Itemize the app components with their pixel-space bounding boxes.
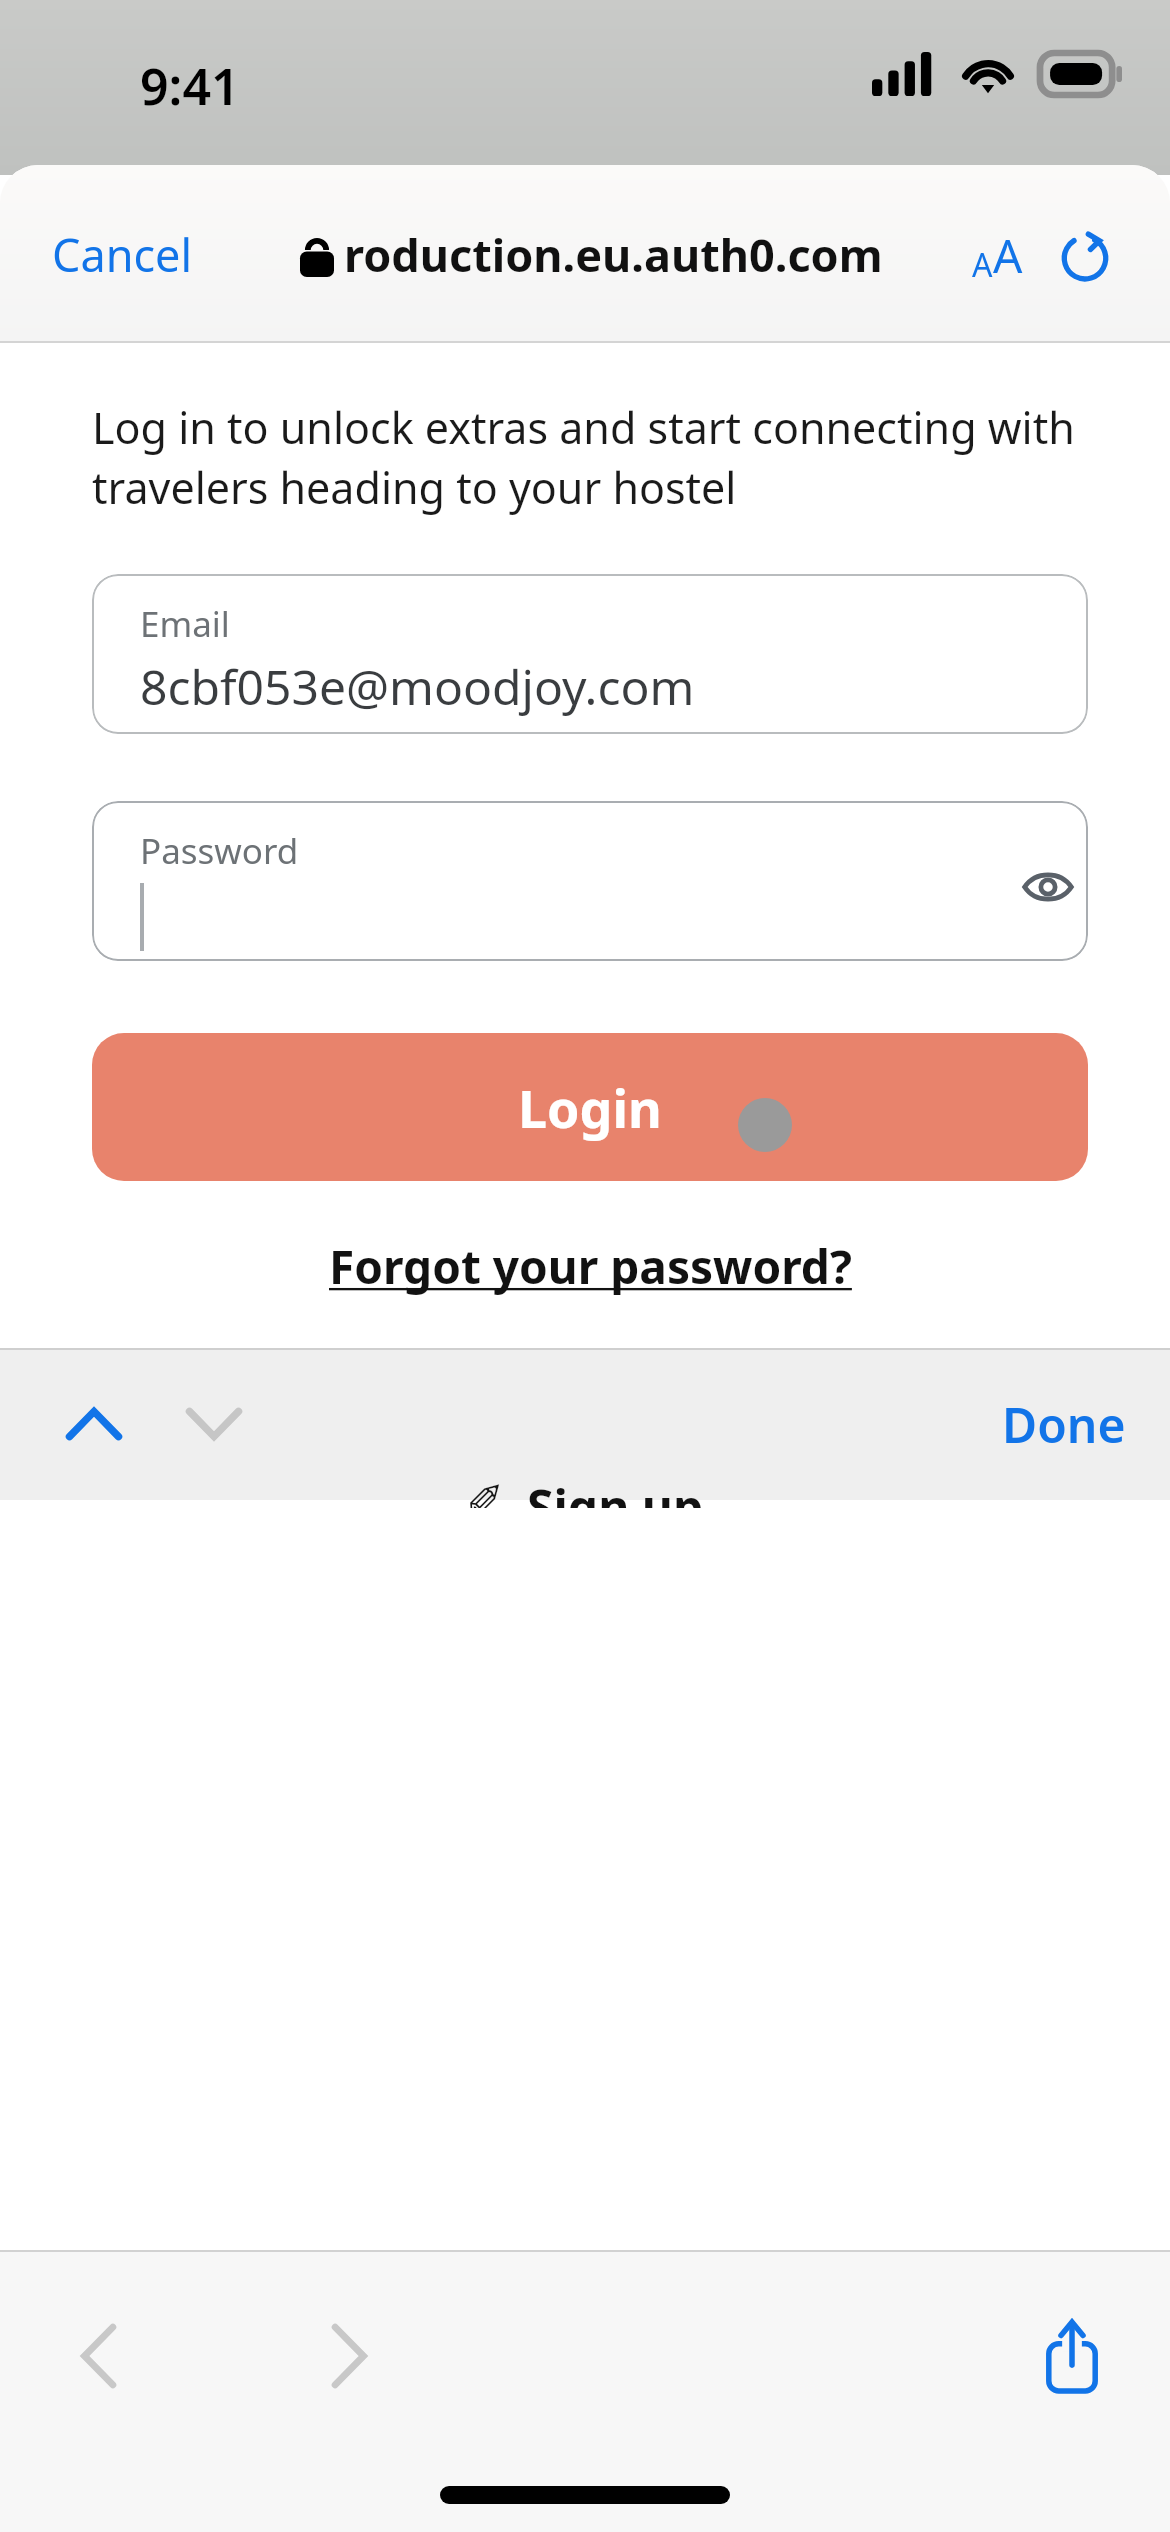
- staticText: Forgot your password?: [329, 1235, 852, 1298]
- staticText: Sign up: [527, 1474, 704, 1508]
- button[interactable]: Forward: [292, 2298, 408, 2414]
- staticText: A: [993, 224, 1023, 287]
- button[interactable]: Cancel: [48, 216, 197, 293]
- button[interactable]: Forgot your password?: [321, 1231, 860, 1302]
- staticText: Cancel: [52, 224, 193, 285]
- staticText: Log in to unlock extras and start connec…: [92, 398, 1088, 517]
- button[interactable]: Text size: [960, 218, 1034, 292]
- button[interactable]: Share: [1014, 2298, 1130, 2414]
- button[interactable]: Previous field: [46, 1376, 142, 1472]
- button[interactable]: Show password: [1008, 847, 1088, 927]
- button[interactable]: Done: [992, 1382, 1136, 1467]
- staticText: 9:41: [140, 52, 240, 120]
- button[interactable]: Reload: [1048, 218, 1122, 292]
- staticText: Login: [518, 1072, 662, 1143]
- staticText: Done: [1002, 1392, 1126, 1457]
- staticText: roduction.eu.auth0.com: [344, 224, 883, 285]
- staticText: Email: [140, 600, 230, 648]
- staticText: A: [972, 243, 993, 287]
- staticText: Password: [140, 827, 299, 875]
- button[interactable]: Back: [40, 2298, 156, 2414]
- button[interactable]: Next field: [166, 1376, 262, 1472]
- button[interactable]: Login: [92, 1033, 1088, 1181]
- staticText: 8cbf053e@moodjoy.com: [140, 654, 695, 719]
- button[interactable]: roduction.eu.auth0.com: [245, 224, 938, 285]
- staticText: ✐: [466, 1474, 505, 1508]
- button[interactable]: Email: [92, 574, 1088, 734]
- button[interactable]: Password: [92, 801, 1088, 961]
